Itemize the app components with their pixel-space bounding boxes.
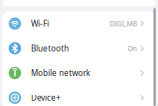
staticText: Bluetooth <box>31 43 69 54</box>
staticText: Mobile network <box>31 68 90 78</box>
button[interactable]: Mobile network <box>2 61 155 85</box>
button[interactable]: Wi-Fi <box>2 11 155 36</box>
staticText: Device+ <box>31 92 61 103</box>
staticText: On <box>128 44 137 53</box>
staticText: Wi-Fi <box>31 18 49 29</box>
staticText: DIGI_MB <box>110 19 137 28</box>
button[interactable]: Bluetooth <box>2 36 155 61</box>
button[interactable]: Device+ <box>2 85 155 106</box>
